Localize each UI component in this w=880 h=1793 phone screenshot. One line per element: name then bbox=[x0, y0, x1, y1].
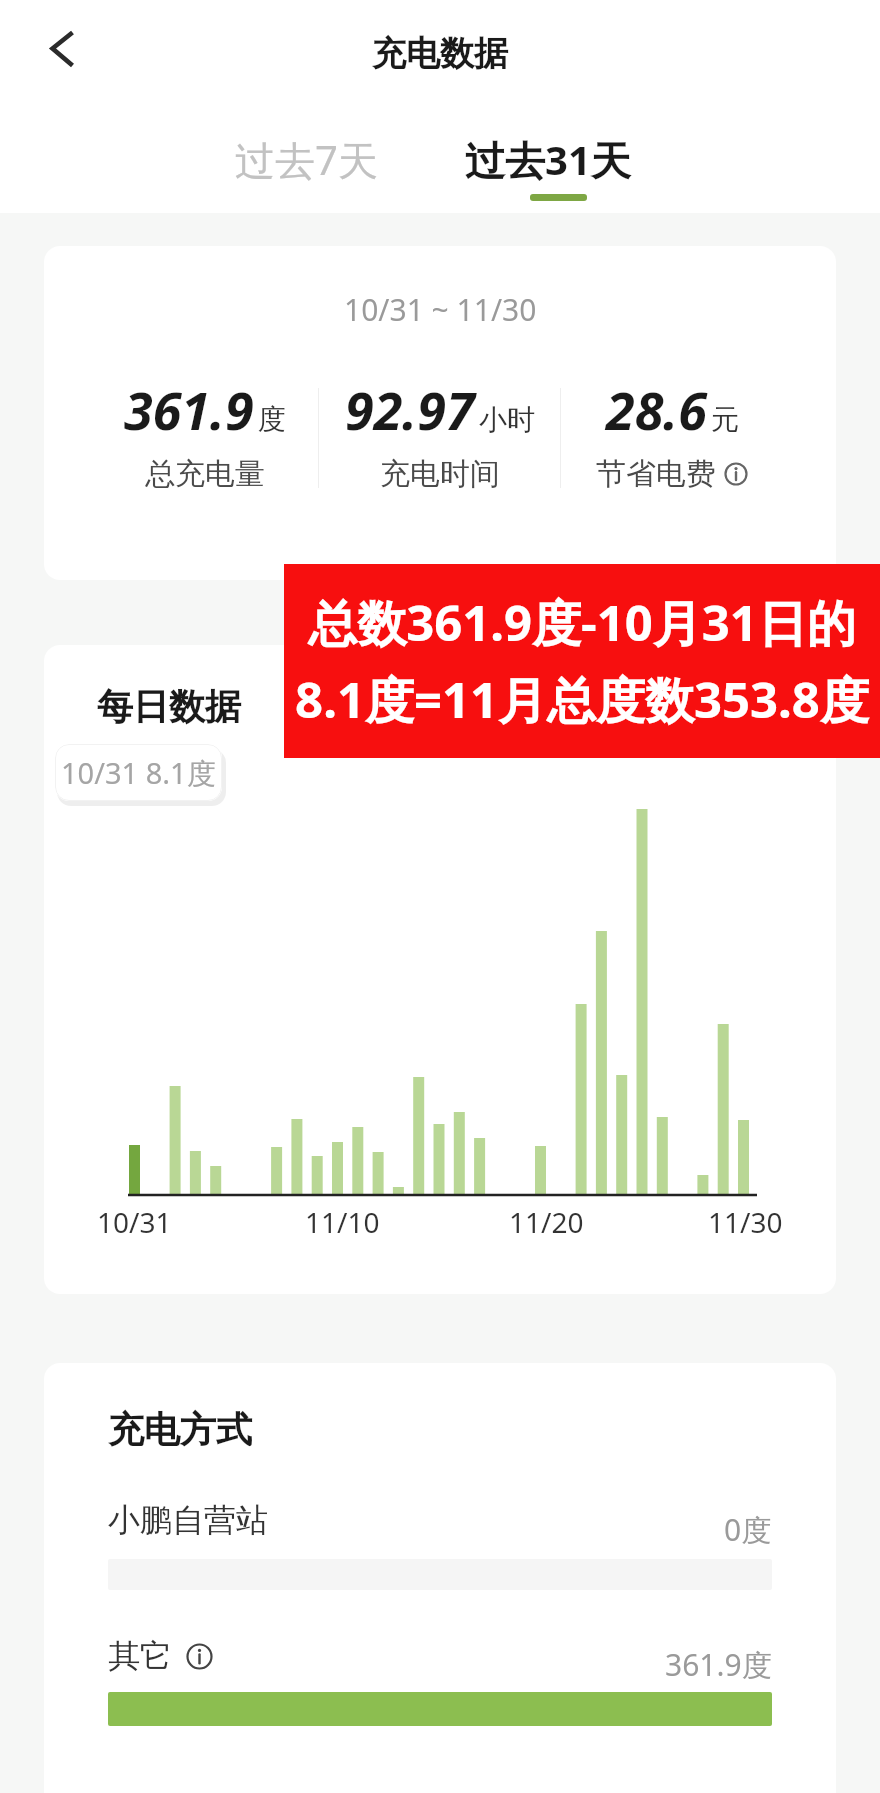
staticText: 过去7天 bbox=[235, 132, 378, 187]
staticText: 11/10 bbox=[305, 1203, 380, 1241]
staticText: 小鹏自营站 bbox=[108, 1500, 268, 1540]
staticText: 10/31 8.1度 bbox=[61, 753, 216, 793]
staticText: 总数361.9度-10月31日的 bbox=[308, 589, 856, 656]
staticText: 10/31 bbox=[97, 1203, 172, 1241]
staticText: 每日数据 bbox=[97, 684, 241, 729]
staticText: 10/31 ~ 11/30 bbox=[344, 289, 537, 330]
button[interactable] bbox=[40, 20, 96, 76]
button[interactable]: 过去7天 bbox=[235, 132, 378, 187]
staticText: 11/20 bbox=[509, 1203, 584, 1241]
staticText: 小时 bbox=[479, 402, 535, 437]
staticText: 11/30 bbox=[708, 1203, 783, 1241]
staticText: 节省电费 bbox=[596, 455, 716, 493]
staticText: 361.9 bbox=[124, 374, 254, 445]
staticText: 充电数据 bbox=[372, 32, 508, 75]
staticText: 8.1度=11月总度数353.8度 bbox=[295, 666, 869, 733]
staticText: 总充电量 bbox=[145, 455, 265, 493]
button[interactable]: 过去31天 bbox=[465, 132, 631, 187]
staticText: 充电方式 bbox=[108, 1407, 252, 1452]
staticText: 充电时间 bbox=[380, 455, 500, 493]
staticText: 361.9度 bbox=[665, 1644, 772, 1685]
staticText: 92.97 bbox=[345, 374, 475, 445]
staticText: 过去31天 bbox=[465, 132, 631, 187]
staticText: 0度 bbox=[724, 1509, 772, 1550]
staticText: 度 bbox=[258, 402, 286, 437]
staticText: 28.6 bbox=[606, 374, 707, 445]
staticText: 其它 bbox=[108, 1636, 172, 1676]
staticText: 元 bbox=[711, 402, 739, 437]
